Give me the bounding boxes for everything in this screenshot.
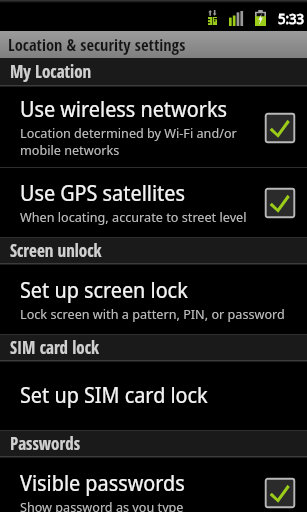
staticText: When locating, accurate to street level: [20, 208, 247, 226]
button[interactable]: Toggle setting: [264, 187, 296, 219]
button[interactable]: Use GPS satellites: [0, 168, 307, 238]
button[interactable]: Set up screen lock: [0, 265, 307, 335]
staticText: 5:33: [278, 9, 305, 28]
button[interactable]: Toggle setting: [264, 112, 296, 144]
staticText: Set up SIM card lock: [20, 381, 208, 410]
staticText: Show password as you type: [20, 498, 184, 512]
staticText: Set up screen lock: [20, 276, 188, 305]
staticText: Visible passwords: [20, 469, 185, 498]
staticText: Use GPS satellites: [20, 179, 186, 208]
button[interactable]: Use wireless networks: [0, 87, 307, 168]
staticText: Location & security settings: [8, 33, 186, 55]
staticText: Location determined by Wi-Fi and/or mobi…: [20, 124, 237, 159]
staticText: Passwords: [10, 432, 80, 455]
staticText: SIM card lock: [10, 336, 100, 359]
staticText: Use wireless networks: [20, 95, 228, 124]
button[interactable]: Visible passwords: [0, 458, 307, 512]
staticText: My Location: [10, 60, 92, 83]
button[interactable]: Set up SIM card lock: [0, 362, 307, 431]
button[interactable]: Toggle setting: [264, 477, 296, 509]
staticText: Screen unlock: [10, 239, 102, 262]
staticText: Lock screen with a pattern, PIN, or pass…: [20, 305, 285, 323]
